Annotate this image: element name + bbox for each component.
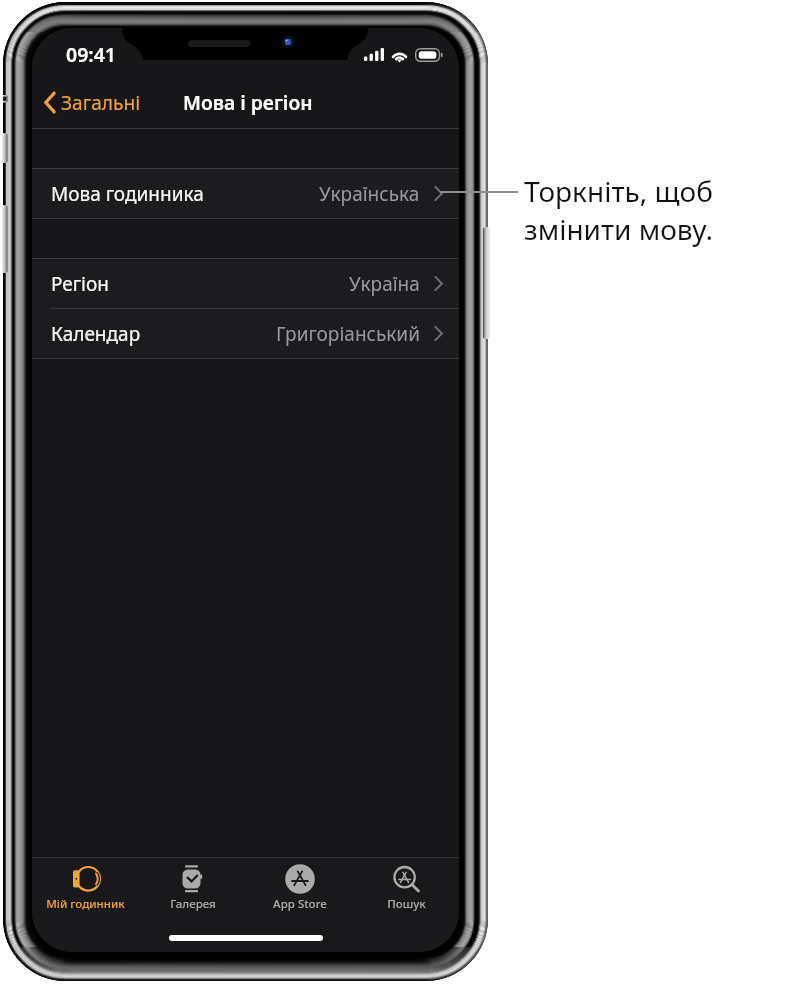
other: Search (391, 863, 421, 894)
staticText: Регіон (51, 271, 109, 297)
button[interactable]: Регіон (32, 259, 459, 308)
staticText: Мій годинник (46, 896, 125, 912)
staticText: Галерея (170, 896, 216, 912)
staticText: Україна (349, 271, 420, 297)
button[interactable]: Календар (32, 309, 459, 358)
button[interactable]: Gallery (139, 858, 246, 919)
button[interactable]: Загальні (32, 83, 147, 121)
staticText: Українська (319, 181, 420, 207)
other: My Watch (71, 863, 101, 894)
button[interactable]: Search (353, 858, 459, 919)
staticText: Загальні (61, 89, 141, 115)
staticText: App Store (273, 896, 327, 912)
button[interactable]: My Watch (32, 858, 139, 919)
button[interactable]: Мова годинника (32, 169, 459, 218)
staticText: Мова годинника (51, 181, 204, 207)
button[interactable]: App Store (246, 858, 353, 919)
other: Gallery (178, 863, 208, 894)
staticText: 09:41 (66, 41, 116, 68)
staticText: Мова і регіон (183, 89, 313, 115)
staticText: Григоріанський (276, 321, 420, 347)
other: App Store (285, 863, 315, 894)
staticText: Торкніть, щоб змінити мову. (524, 172, 713, 248)
staticText: Календар (51, 321, 141, 347)
staticText: Пошук (387, 896, 426, 912)
